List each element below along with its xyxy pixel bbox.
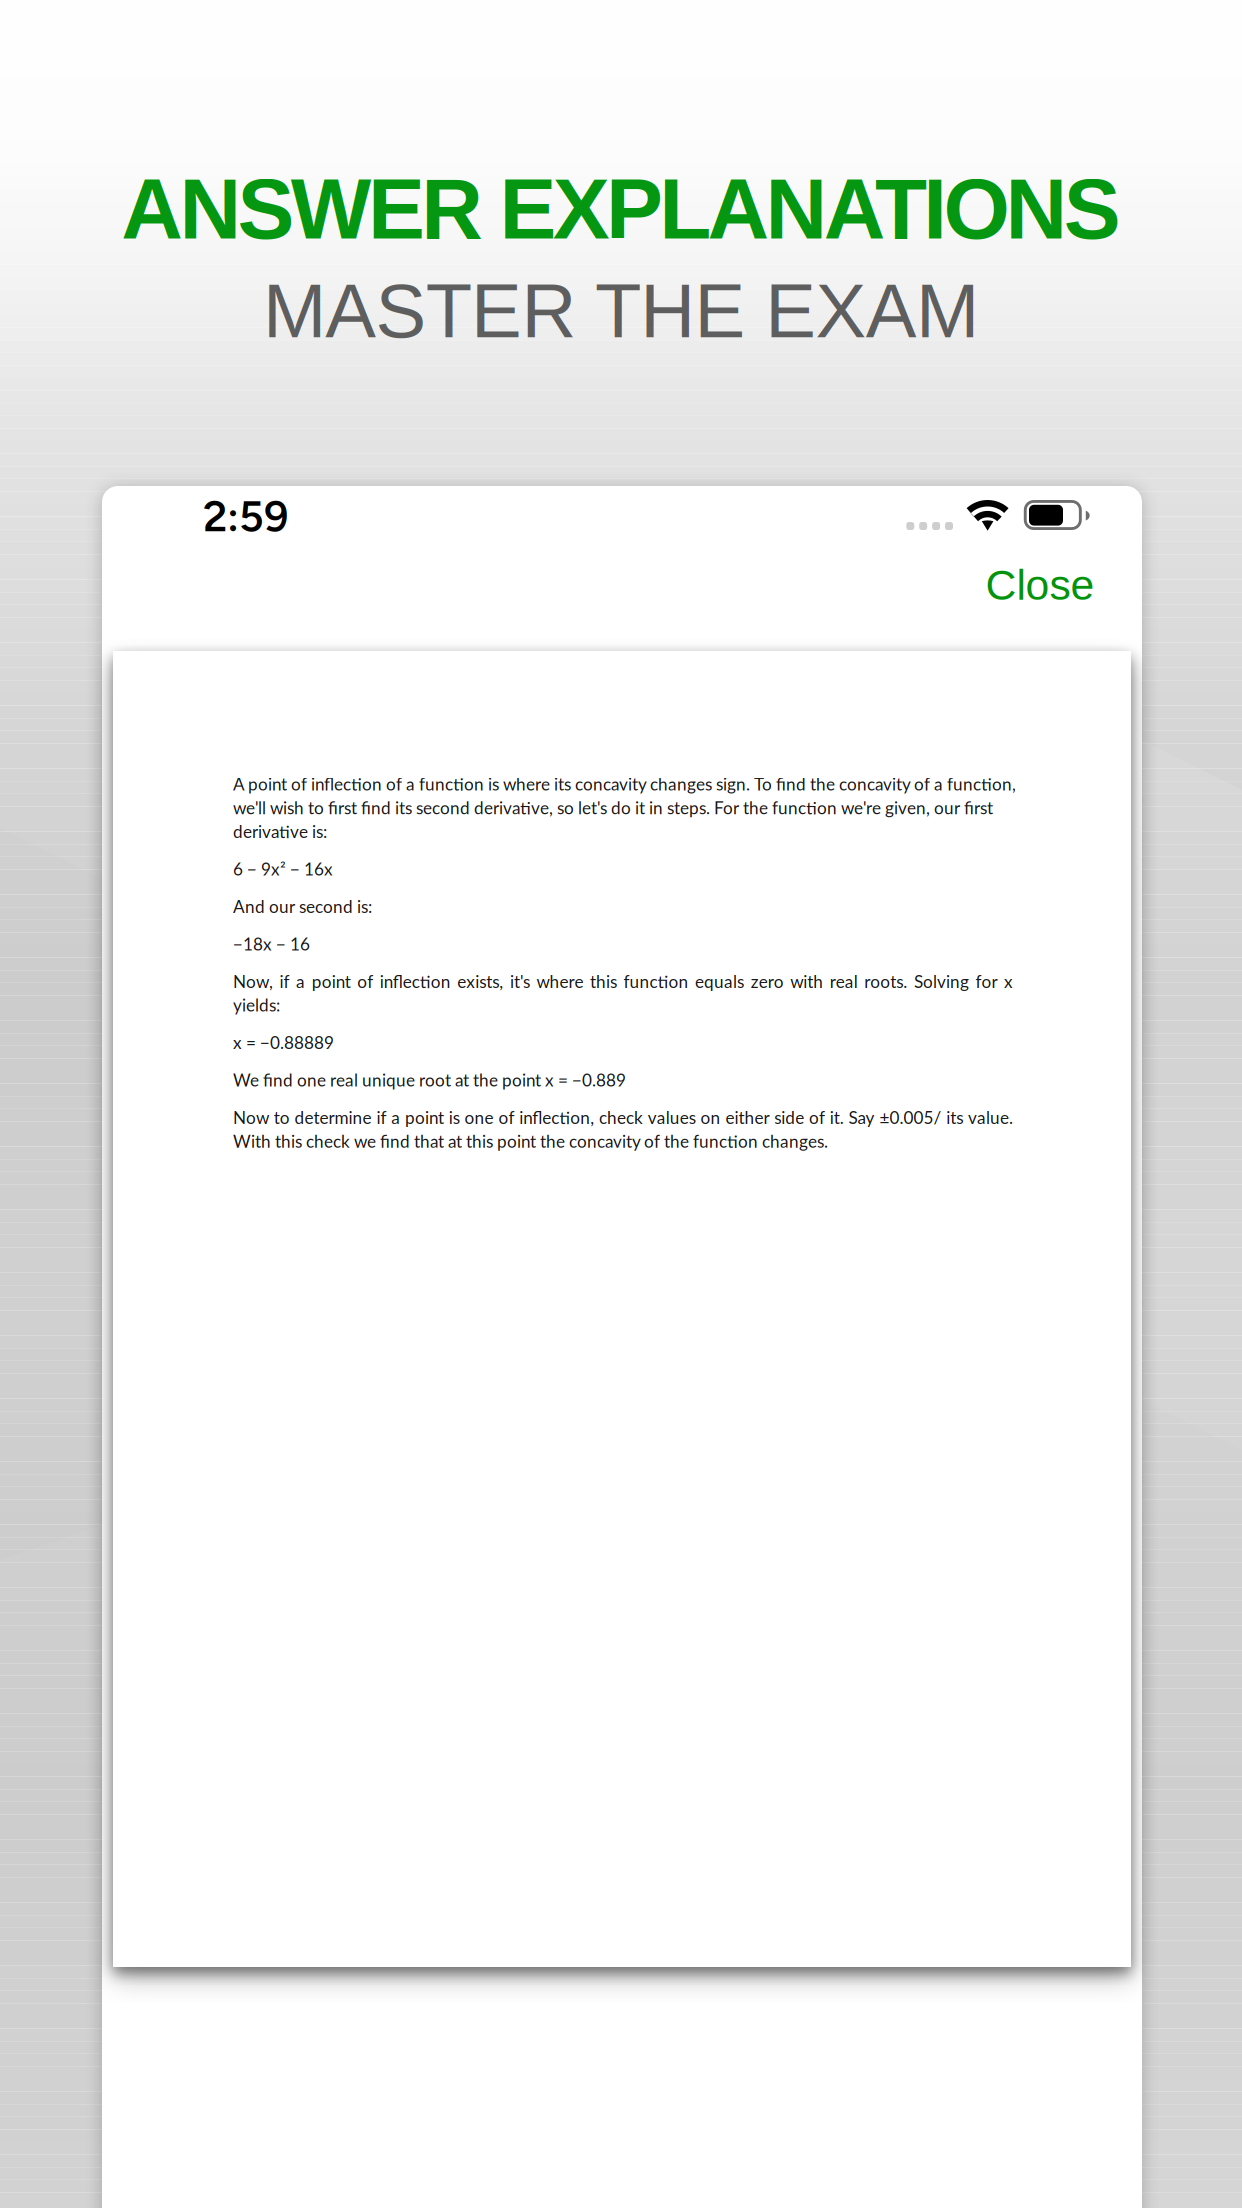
staticText: −18x − 16 <box>233 933 310 954</box>
staticText: 6 − 9x² − 16x <box>233 858 333 879</box>
staticText: Now <box>233 1107 269 1128</box>
staticText: either <box>725 1107 769 1128</box>
staticText: to <box>274 1107 290 1128</box>
staticText: inflection, <box>519 1107 594 1128</box>
staticText: Say <box>849 1107 875 1128</box>
staticText: With this check we find that at this poi… <box>233 1131 828 1151</box>
staticText: check <box>599 1107 643 1128</box>
staticText: one <box>465 1107 494 1128</box>
staticText: value. <box>968 1107 1013 1128</box>
staticText: of <box>498 1107 514 1128</box>
staticText: inflection <box>380 971 451 992</box>
button[interactable]: Close <box>960 541 1120 629</box>
staticText: point <box>312 971 351 992</box>
staticText: equals <box>695 971 744 992</box>
staticText: We find one real unique root at the poin… <box>233 1070 626 1090</box>
staticText: 2:59 <box>203 491 288 542</box>
staticText: derivative is: <box>233 821 327 842</box>
staticText: zero <box>751 971 784 992</box>
staticText: it's <box>510 971 530 992</box>
staticText: ANSWER EXPLANATIONS <box>121 161 1121 257</box>
staticText: for <box>975 971 997 992</box>
staticText: point <box>405 1107 444 1128</box>
staticText: values <box>648 1107 696 1128</box>
staticText: And our second is: <box>233 896 372 917</box>
staticText: A point of inflection of a function is w… <box>233 774 1016 794</box>
staticText: if <box>376 1107 386 1128</box>
staticText: its <box>946 1107 963 1128</box>
staticText: of <box>357 971 373 992</box>
staticText: Close <box>985 561 1094 609</box>
staticText: ±0.005/ <box>879 1107 941 1128</box>
staticText: determine <box>295 1107 372 1128</box>
staticText: with <box>790 971 823 992</box>
staticText: real <box>830 971 858 992</box>
staticText: a <box>296 971 305 992</box>
staticText: x <box>1004 971 1013 992</box>
staticText: it. <box>830 1107 844 1128</box>
staticText: Solving <box>914 971 969 992</box>
staticText: roots. <box>864 971 907 992</box>
staticText: where <box>536 971 583 992</box>
staticText: is <box>449 1107 460 1128</box>
staticText: x = −0.88889 <box>233 1032 334 1053</box>
staticText: of <box>809 1107 825 1128</box>
staticText: Now, <box>233 971 273 992</box>
staticText: yields: <box>233 995 280 1015</box>
staticText: side <box>774 1107 804 1128</box>
staticText: exists, <box>457 971 503 992</box>
staticText: a <box>391 1107 400 1128</box>
staticText: on <box>701 1107 721 1128</box>
staticText: this <box>590 971 617 992</box>
staticText: MASTER THE EXAM <box>263 268 979 353</box>
staticText: if <box>280 971 290 992</box>
staticText: we'll wish to first find its second deri… <box>233 797 993 818</box>
staticText: function <box>624 971 689 992</box>
